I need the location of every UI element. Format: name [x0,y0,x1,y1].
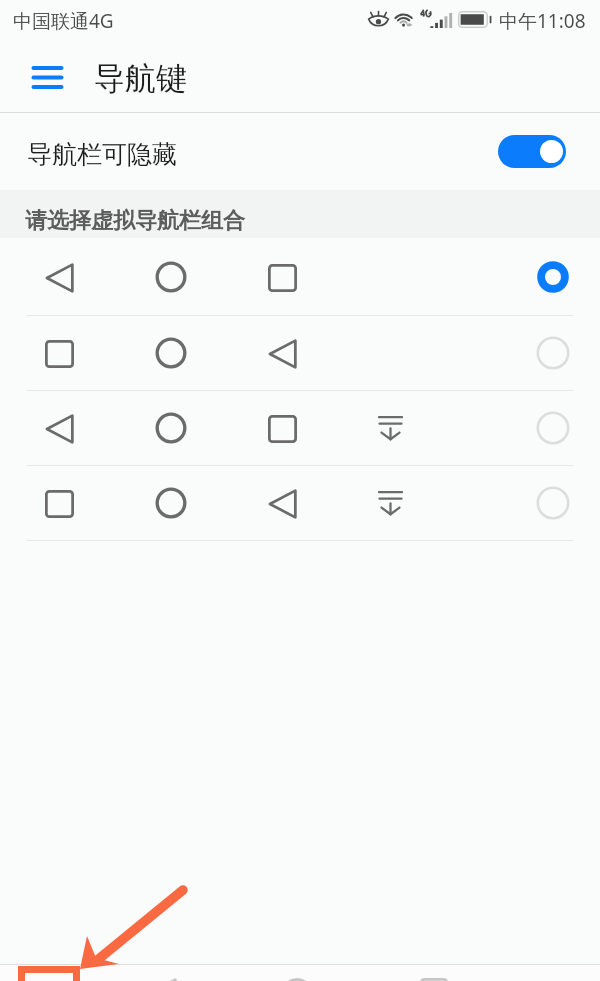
staticText: 导航键 [94,59,187,98]
staticText: 中午11:08 [499,8,586,34]
button[interactable]: Menu [4,51,62,107]
button[interactable]: Home [281,978,313,981]
staticText: 中国联通4G [13,8,114,34]
button[interactable] [0,390,600,465]
button[interactable] [0,465,600,540]
staticText: 请选择虚拟导航栏组合 [25,207,245,235]
button[interactable] [0,238,600,315]
button[interactable] [0,315,600,390]
button[interactable]: Back [147,978,177,981]
button[interactable]: Recents [420,978,448,981]
staticText: 导航栏可隐藏 [27,139,177,170]
button[interactable]: 导航栏可隐藏 [0,113,600,190]
